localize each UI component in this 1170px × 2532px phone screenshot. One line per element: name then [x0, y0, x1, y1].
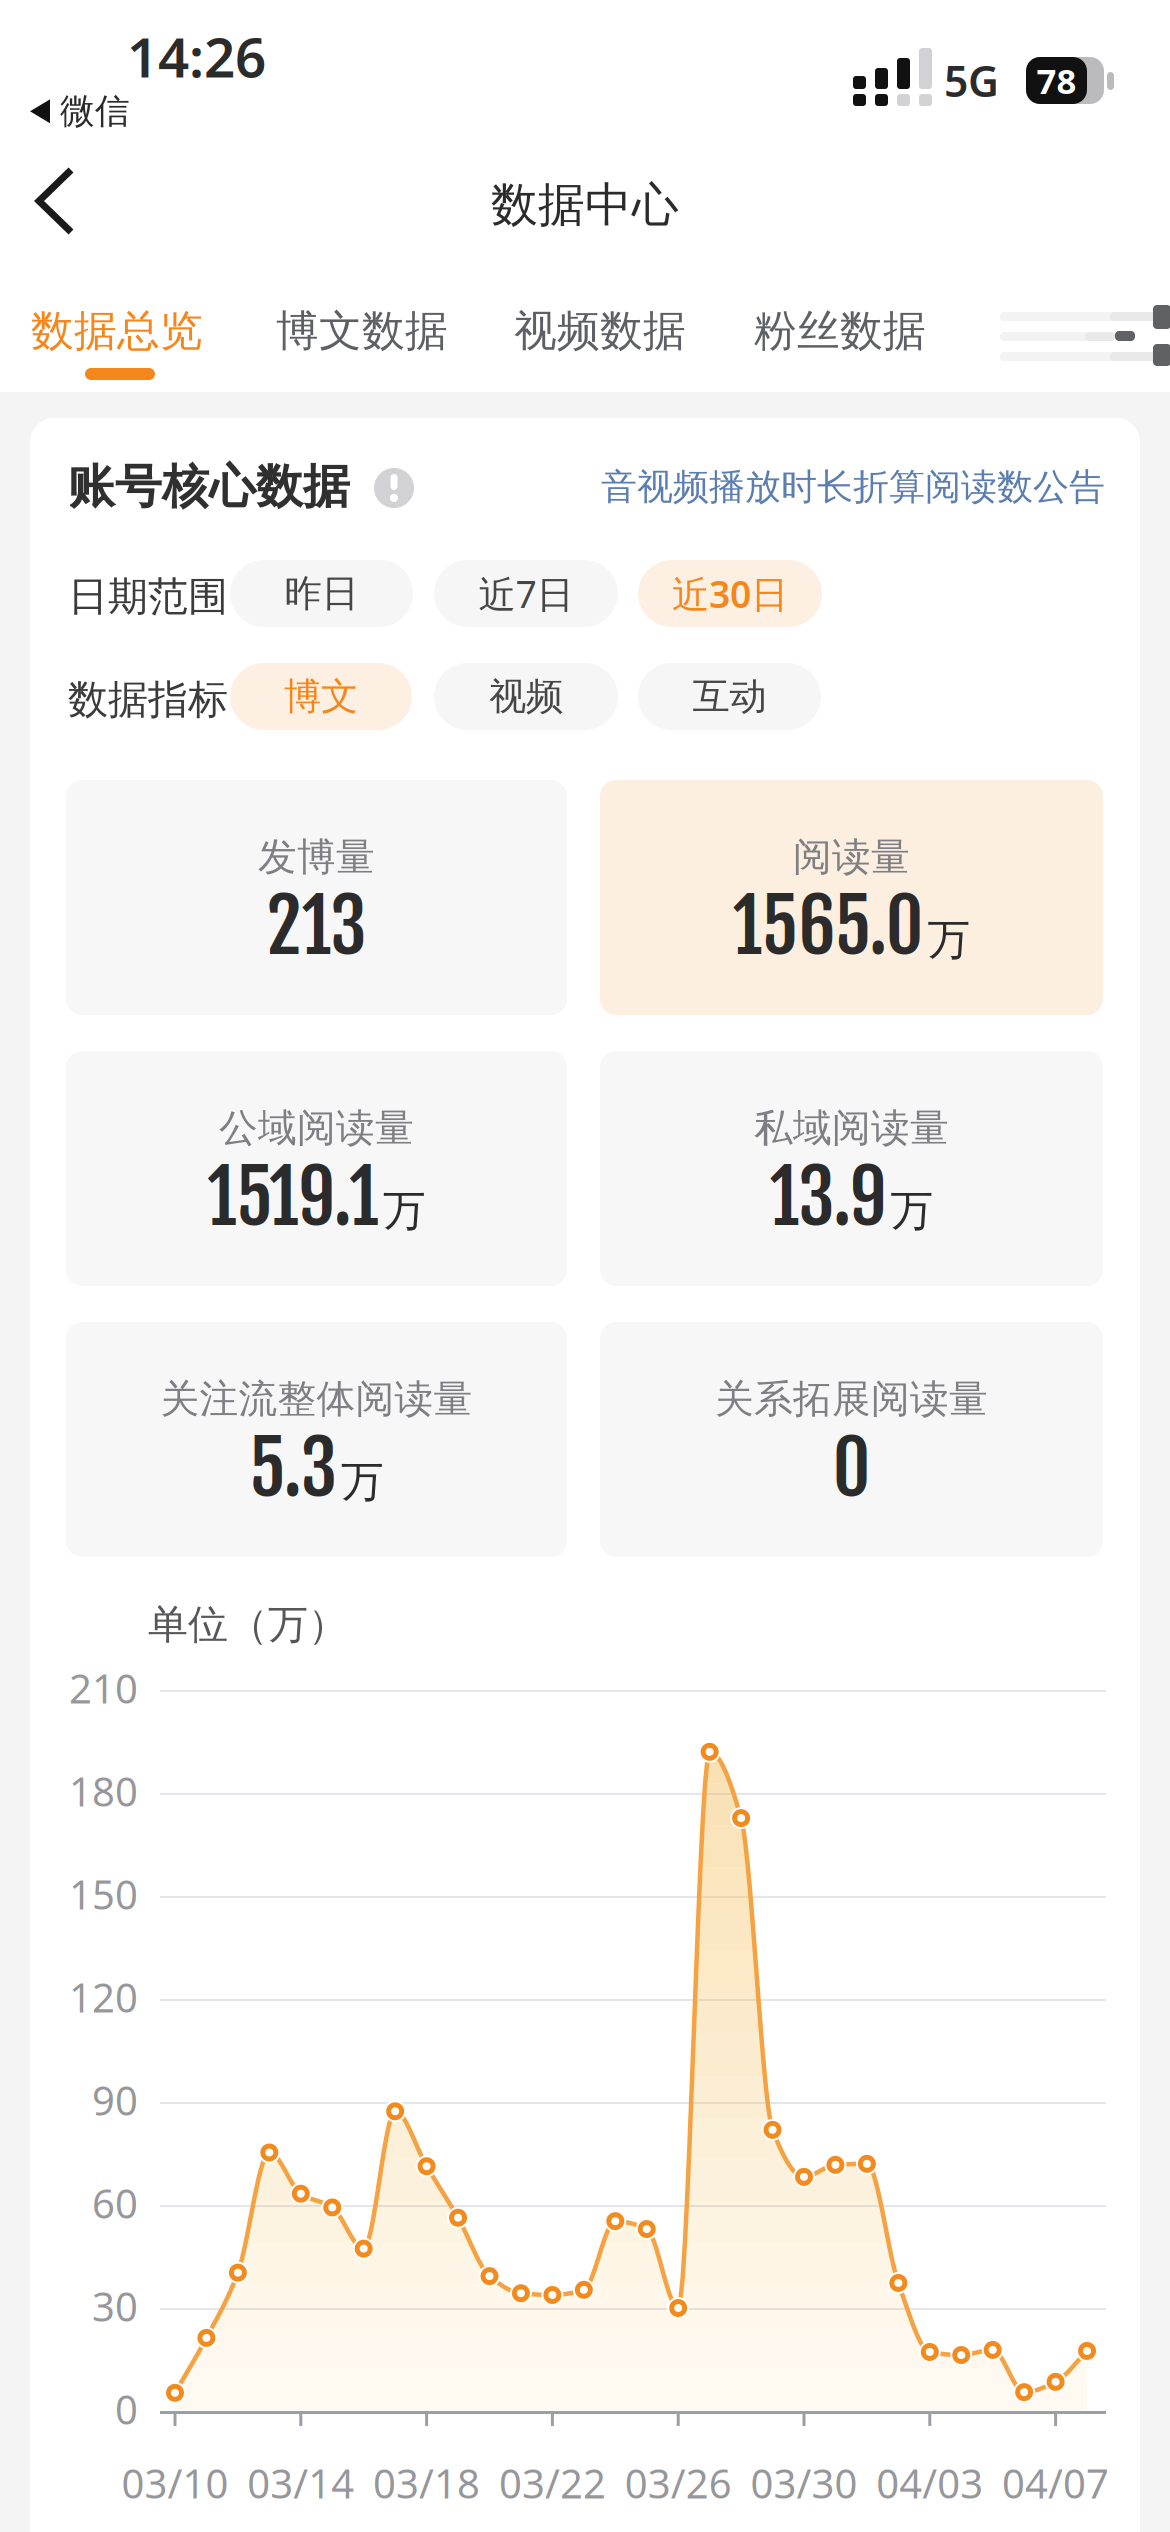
staticText: 0 [115, 2382, 138, 2435]
staticText: 90 [92, 2073, 138, 2126]
button[interactable]: 关系拓展阅读量 [600, 1322, 1103, 1557]
staticText: 0 [832, 1422, 870, 1514]
staticText: 13.9 [769, 1151, 886, 1243]
staticText: 78 [1036, 57, 1076, 103]
staticText: 03/22 [499, 2456, 606, 2509]
staticText: 视频数据 [514, 305, 686, 357]
staticText: 阅读量 [793, 833, 910, 881]
button[interactable]: 近30日 [638, 560, 822, 627]
staticText: 数据总览 [31, 305, 203, 357]
button[interactable]: 公域阅读量 [66, 1051, 567, 1286]
staticText: 近30日 [672, 569, 788, 618]
staticText: 60 [92, 2176, 138, 2229]
staticText: 03/14 [247, 2456, 354, 2509]
staticText: 博文数据 [276, 305, 448, 357]
staticText: 账号核心数据 [68, 458, 350, 515]
staticText: 1565.0 [732, 880, 923, 972]
staticText: 03/30 [750, 2456, 857, 2509]
staticText: 微信 [60, 90, 130, 133]
staticText: 04/03 [876, 2456, 983, 2509]
staticText: 04/07 [1002, 2456, 1109, 2509]
button[interactable]: 昨日 [230, 560, 413, 627]
staticText: 昨日 [284, 571, 358, 616]
button[interactable]: Back to WeChat [30, 90, 130, 133]
button[interactable]: Back [25, 156, 89, 248]
staticText: 5G [944, 52, 999, 109]
button[interactable]: 关注流整体阅读量 [66, 1322, 567, 1557]
button[interactable]: 博文数据 [276, 305, 448, 357]
staticText: 万 [927, 913, 970, 966]
button[interactable]: 粉丝数据 [754, 305, 926, 357]
button[interactable]: 互动 [638, 663, 821, 730]
staticText: 视频 [489, 674, 563, 719]
button[interactable]: Info [374, 468, 414, 508]
staticText: 万 [890, 1184, 933, 1237]
staticText: 03/18 [373, 2456, 480, 2509]
button[interactable]: 音视频播放时长折算阅读数公告 [601, 465, 1105, 509]
staticText: 数据中心 [491, 176, 679, 234]
staticText: 120 [69, 1970, 138, 2023]
staticText: 150 [69, 1867, 138, 1920]
staticText: 公域阅读量 [219, 1104, 414, 1152]
staticText: 关系拓展阅读量 [715, 1375, 988, 1423]
staticText: 关注流整体阅读量 [160, 1375, 472, 1423]
staticText: 日期范围 [68, 572, 228, 621]
staticText: 博文 [284, 674, 358, 719]
button[interactable]: 私域阅读量 [600, 1051, 1103, 1286]
staticText: 1519.1 [207, 1151, 379, 1243]
button[interactable]: 发博量 [66, 780, 567, 1015]
staticText: 03/26 [625, 2456, 732, 2509]
staticText: 数据指标 [68, 675, 228, 724]
staticText: 近7日 [478, 569, 573, 618]
button[interactable]: 博文 [230, 663, 412, 730]
button[interactable]: 数据总览 [31, 305, 203, 357]
button[interactable]: 视频 [434, 663, 618, 730]
button[interactable]: 近7日 [434, 560, 618, 627]
staticText: 粉丝数据 [754, 305, 926, 357]
staticText: 14:26 [127, 20, 266, 93]
button[interactable]: 视频数据 [514, 305, 686, 357]
staticText: 03/10 [121, 2456, 228, 2509]
staticText: 单位（万） [148, 1600, 348, 1649]
staticText: 213 [266, 880, 366, 972]
staticText: 210 [69, 1661, 138, 1714]
staticText: 发博量 [258, 833, 375, 881]
staticText: 万 [383, 1184, 426, 1237]
staticText: 私域阅读量 [754, 1104, 949, 1152]
staticText: 5.3 [249, 1422, 337, 1514]
staticText: 音视频播放时长折算阅读数公告 [601, 465, 1105, 509]
staticText: 30 [92, 2279, 138, 2332]
staticText: 互动 [692, 674, 766, 719]
staticText: 万 [341, 1455, 384, 1508]
button[interactable]: 阅读量 [600, 780, 1103, 1015]
staticText: 180 [69, 1764, 138, 1817]
